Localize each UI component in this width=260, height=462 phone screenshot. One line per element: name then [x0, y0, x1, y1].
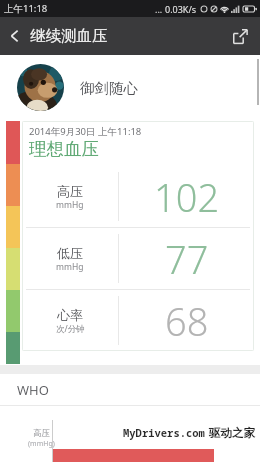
- staticText: 2014年9月30日 上午11:18: [29, 125, 142, 138]
- staticText: 68: [165, 295, 209, 347]
- staticText: 理想血压: [29, 138, 99, 160]
- staticText: ...: [155, 3, 163, 15]
- staticText: 心率: [57, 307, 83, 323]
- staticText: 102: [154, 171, 220, 223]
- button[interactable]: 御剑随心: [0, 55, 260, 120]
- button[interactable]: Share: [225, 21, 256, 52]
- button[interactable]: Back: [2, 20, 27, 52]
- staticText: 上午11:18: [4, 2, 48, 15]
- staticText: MyDrivers.com: [123, 426, 205, 440]
- staticText: (mmHg): [28, 439, 55, 449]
- staticText: 77: [165, 233, 209, 285]
- staticText: 0.03K/s: [165, 3, 197, 15]
- staticText: WHO: [17, 381, 49, 399]
- staticText: 高压: [57, 183, 83, 199]
- button[interactable]: 2014年9月30日 上午11:18: [22, 121, 254, 351]
- staticText: 低压: [57, 245, 83, 261]
- staticText: 高压: [33, 428, 50, 439]
- staticText: mmHg: [56, 261, 84, 273]
- staticText: 次/分钟: [56, 323, 85, 335]
- staticText: 继续测血压: [30, 26, 108, 46]
- staticText: 御剑随心: [80, 79, 138, 97]
- staticText: 驱动之家: [209, 426, 255, 440]
- staticText: mmHg: [56, 199, 84, 211]
